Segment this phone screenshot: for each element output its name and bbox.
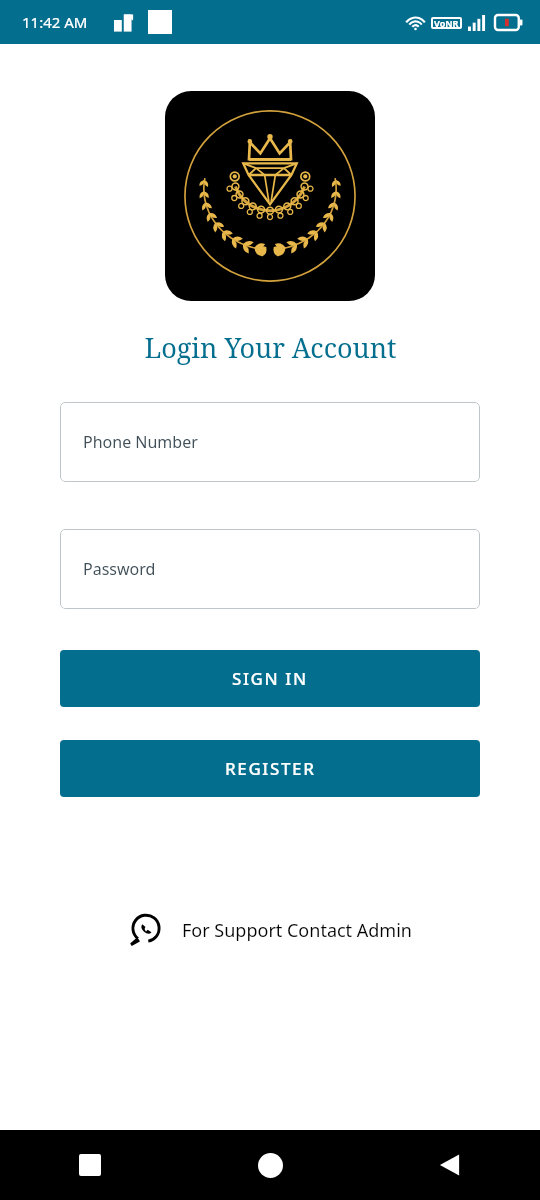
button[interactable]: Password: [60, 529, 480, 609]
button[interactable]: Recents: [0, 1130, 180, 1200]
staticText: Password: [83, 558, 156, 580]
staticText: For Support Contact Admin: [182, 918, 412, 943]
staticText: REGISTER: [225, 757, 316, 780]
other: WhatsApp support: [128, 913, 162, 947]
staticText: SIGN IN: [232, 667, 308, 690]
staticText: Phone Number: [83, 431, 198, 453]
button[interactable]: REGISTER: [60, 740, 480, 797]
button[interactable]: SIGN IN: [60, 650, 480, 707]
button[interactable]: Home: [180, 1130, 360, 1200]
staticText: Login Your Account: [144, 329, 397, 366]
button[interactable]: Phone Number: [60, 402, 480, 482]
staticText: 11:42 AM: [22, 12, 88, 32]
button[interactable]: Back: [360, 1130, 540, 1200]
staticText: VoNR: [434, 17, 459, 29]
button[interactable]: WhatsApp support: [120, 909, 420, 951]
